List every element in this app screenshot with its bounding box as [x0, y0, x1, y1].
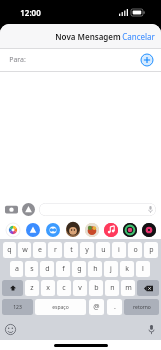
button[interactable]: m: [121, 280, 135, 296]
staticText: w: [22, 245, 28, 255]
button[interactable]: g: [72, 261, 86, 277]
staticText: l: [142, 264, 144, 274]
staticText: g: [77, 264, 82, 274]
button[interactable]: 123: [2, 299, 33, 315]
staticText: j: [110, 264, 112, 274]
staticText: t: [70, 245, 73, 255]
button[interactable]: Câmara: [5, 203, 18, 216]
staticText: a: [15, 264, 19, 274]
staticText: y: [85, 245, 89, 255]
button[interactable]: c: [57, 280, 71, 296]
button[interactable]: App 4: [82, 220, 101, 239]
button[interactable]: w: [18, 242, 31, 258]
button[interactable]: t: [64, 242, 78, 258]
staticText: z: [30, 283, 34, 293]
button[interactable]: p: [144, 242, 158, 258]
staticText: r: [54, 245, 57, 255]
staticText: d: [45, 264, 50, 274]
button[interactable]: .: [107, 299, 122, 315]
button[interactable]: a: [10, 261, 23, 277]
staticText: .: [114, 302, 116, 312]
button[interactable]: v: [73, 280, 87, 296]
button[interactable]: @: [89, 299, 104, 315]
button[interactable]: Emoji: [5, 324, 16, 335]
staticText: espaço: [52, 304, 69, 311]
button[interactable]: i: [112, 242, 126, 258]
button[interactable]: App 7: [139, 220, 158, 239]
button[interactable]: App 6: [120, 220, 139, 239]
staticText: m: [125, 283, 132, 293]
button[interactable]: k: [120, 261, 134, 277]
button[interactable]: Shift: [2, 280, 23, 296]
staticText: s: [30, 264, 34, 274]
staticText: u: [101, 245, 106, 255]
staticText: c: [62, 283, 66, 293]
button[interactable]: App 2: [43, 220, 63, 239]
staticText: v: [78, 283, 82, 293]
staticText: e: [38, 245, 42, 255]
staticText: 123: [13, 304, 22, 311]
button[interactable]: retorno: [124, 299, 159, 315]
button[interactable]: Apagar: [137, 280, 159, 296]
button[interactable]: h: [88, 261, 102, 277]
button[interactable]: y: [80, 242, 94, 258]
button[interactable]: j: [104, 261, 118, 277]
staticText: p: [149, 245, 154, 255]
button[interactable]: q: [3, 242, 16, 258]
button[interactable]: b: [89, 280, 103, 296]
button[interactable]: App 3: [63, 220, 82, 239]
staticText: x: [46, 283, 50, 293]
staticText: b: [94, 283, 99, 293]
button[interactable]: z: [25, 280, 39, 296]
staticText: q: [7, 245, 12, 255]
staticText: Cancelar: [122, 31, 155, 42]
button[interactable]: App 1: [23, 220, 43, 239]
button[interactable]: u: [96, 242, 110, 258]
staticText: o: [133, 245, 138, 255]
button[interactable]: l: [136, 261, 150, 277]
staticText: f: [62, 264, 65, 274]
button[interactable]: d: [40, 261, 54, 277]
button[interactable]: f: [56, 261, 70, 277]
button[interactable]: o: [128, 242, 142, 258]
button[interactable]: s: [25, 261, 38, 277]
staticText: retorno: [133, 304, 151, 311]
button[interactable]: Ditado: [148, 324, 155, 335]
staticText: @: [93, 302, 100, 312]
button[interactable]: App 0: [3, 220, 23, 239]
staticText: h: [93, 264, 98, 274]
button[interactable]: App 5: [101, 220, 120, 239]
button[interactable]: n: [105, 280, 119, 296]
staticText: i: [118, 245, 120, 255]
button[interactable]: e: [33, 242, 46, 258]
button[interactable]: Adicionar contacto: [141, 54, 153, 66]
staticText: Para:: [9, 55, 26, 65]
staticText: 12:00: [20, 7, 41, 18]
button[interactable]: x: [41, 280, 55, 296]
button[interactable]: [39, 203, 156, 216]
button[interactable]: espaço: [35, 299, 86, 315]
staticText: n: [110, 283, 115, 293]
staticText: Nova Mensagem: [55, 31, 121, 42]
button[interactable]: Loja de apps: [22, 203, 35, 216]
button[interactable]: Cancelar: [116, 27, 161, 46]
button[interactable]: r: [48, 242, 62, 258]
staticText: k: [125, 264, 129, 274]
